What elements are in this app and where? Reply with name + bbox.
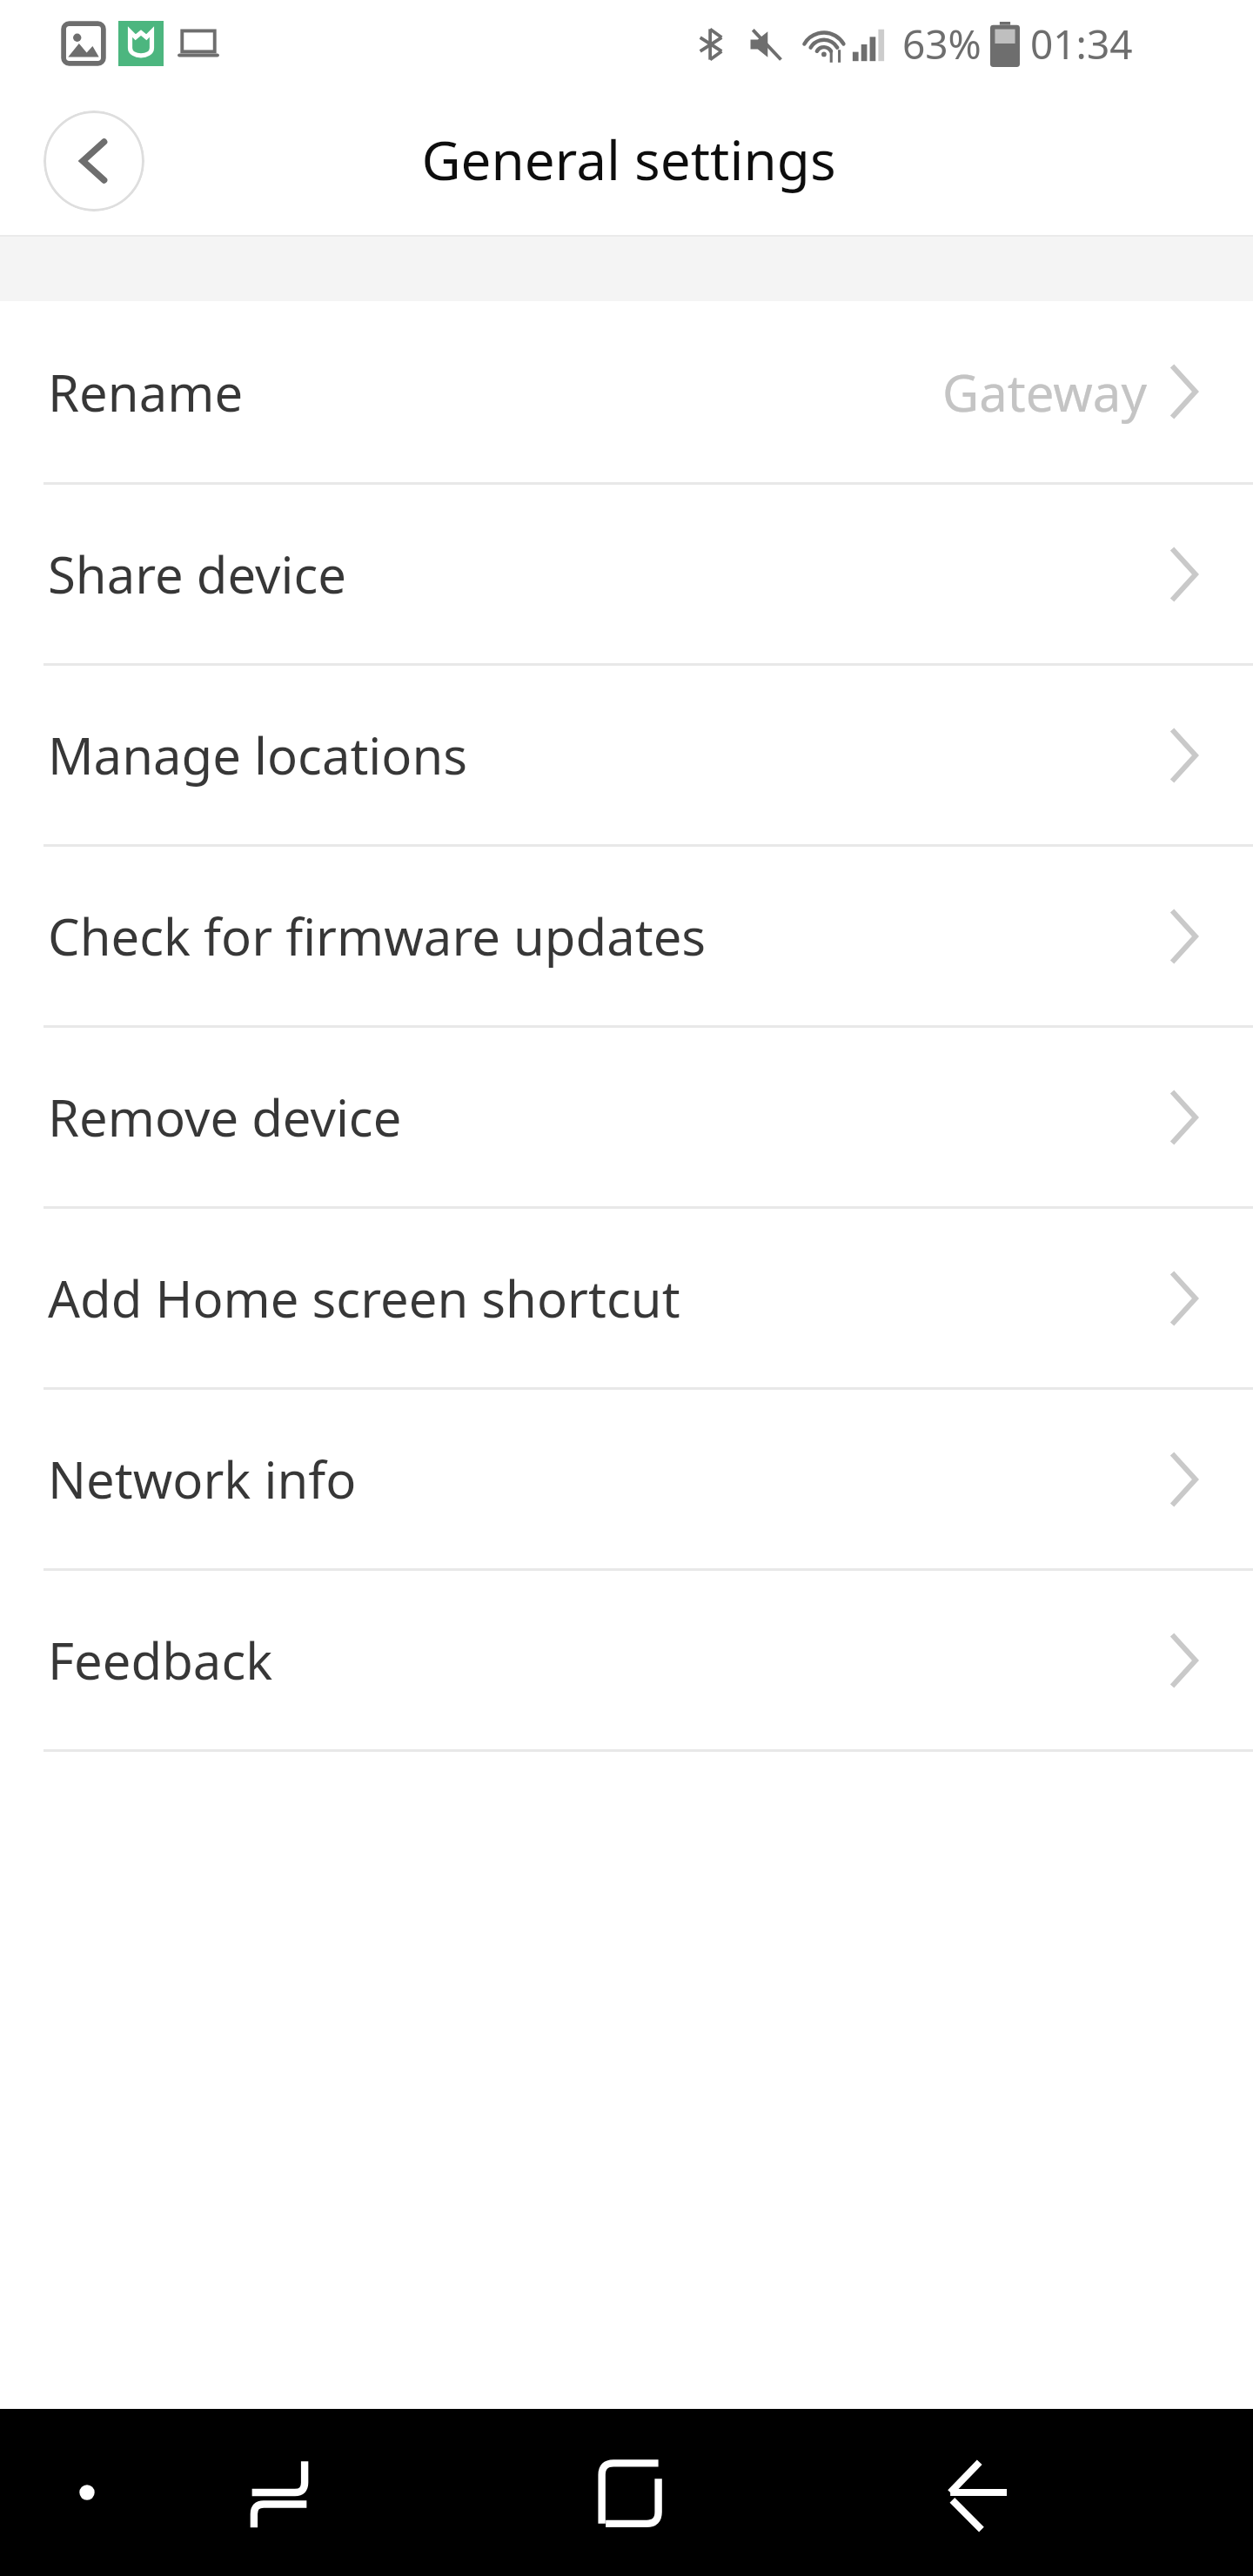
staticText: 63% — [902, 17, 982, 71]
button[interactable]: Home — [580, 2444, 678, 2541]
button[interactable]: Network info — [0, 1390, 1253, 1568]
button[interactable]: Menu dot — [61, 2466, 113, 2519]
button[interactable]: Share device — [0, 485, 1253, 663]
button[interactable]: Feedback — [0, 1571, 1253, 1749]
staticText: Feedback — [48, 1626, 273, 1694]
button[interactable]: Add Home screen shortcut — [0, 1209, 1253, 1387]
button[interactable]: Manage locations — [0, 666, 1253, 844]
staticText: 01:34 — [1030, 17, 1133, 71]
button[interactable]: Recents — [231, 2444, 328, 2541]
button[interactable]: Remove device — [0, 1028, 1253, 1206]
staticText: Remove device — [48, 1083, 402, 1151]
staticText: Manage locations — [48, 721, 468, 789]
staticText: Rename — [48, 358, 244, 426]
button[interactable]: Back — [44, 111, 144, 211]
button[interactable]: Check for firmware updates — [0, 847, 1253, 1025]
button[interactable]: Back — [925, 2444, 1022, 2541]
staticText: Share device — [48, 540, 347, 608]
staticText: Add Home screen shortcut — [48, 1264, 680, 1332]
staticText: Check for firmware updates — [48, 902, 707, 970]
staticText: General settings — [421, 123, 836, 196]
staticText: Gateway — [942, 358, 1147, 426]
button[interactable]: Rename — [0, 301, 1253, 482]
staticText: Network info — [48, 1445, 357, 1513]
